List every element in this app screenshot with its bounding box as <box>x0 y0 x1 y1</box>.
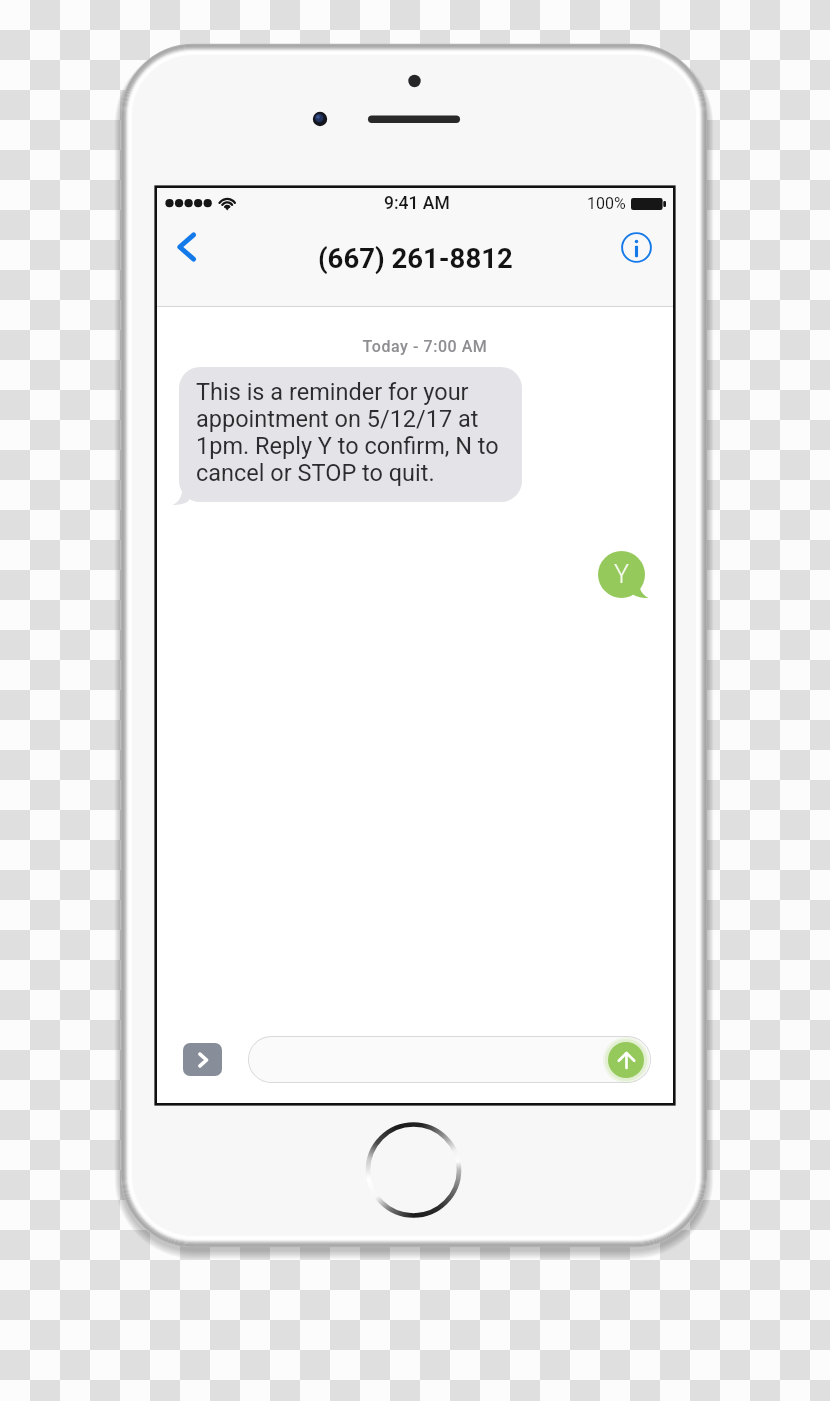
button[interactable]: This is a reminder for your appointment … <box>179 367 522 502</box>
staticText: (667) 261-8812 <box>318 242 513 274</box>
button[interactable]: Send <box>608 1042 644 1078</box>
button[interactable]: Y <box>598 551 645 598</box>
button[interactable]: App drawer <box>183 1043 222 1076</box>
staticText: Y <box>614 560 629 589</box>
button[interactable]: Back <box>165 224 211 270</box>
button[interactable]: Conversation details <box>615 226 657 268</box>
staticText: Today - 7:00 AM <box>167 337 683 356</box>
staticText: 9:41 AM <box>384 193 450 214</box>
staticText: This is a reminder for your appointment … <box>196 378 500 486</box>
staticText: 100% <box>587 194 626 213</box>
button[interactable] <box>248 1036 651 1083</box>
